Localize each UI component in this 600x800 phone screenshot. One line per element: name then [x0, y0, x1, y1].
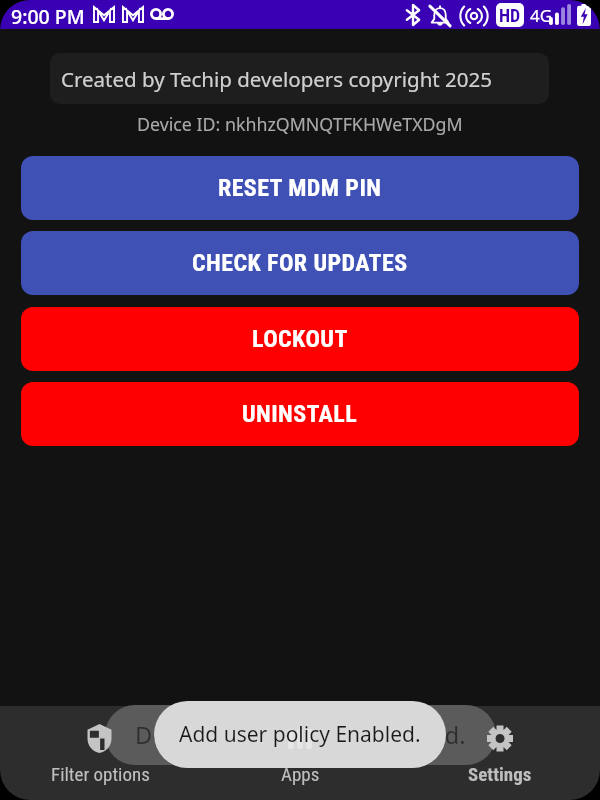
staticText: Created by Techip developers copyright 2…: [61, 65, 492, 93]
staticText: Filter options: [51, 763, 150, 785]
button[interactable]: Apps: [200, 706, 400, 800]
button[interactable]: LOCKOUT: [21, 307, 579, 371]
staticText: CHECK FOR UPDATES: [192, 249, 408, 277]
button[interactable]: Settings: [400, 706, 600, 800]
staticText: 4G: [530, 4, 553, 27]
staticText: RESET MDM PIN: [218, 174, 382, 202]
button[interactable]: CHECK FOR UPDATES: [21, 231, 579, 295]
staticText: Device ID: nkhhzQMNQTFKHWeTXDgM: [137, 112, 463, 136]
button[interactable]: UNINSTALL: [21, 382, 579, 446]
staticText: UNINSTALL: [242, 400, 358, 428]
staticText: Add user policy Enabled.: [179, 720, 421, 749]
staticText: Debug user policy is Disabled.: [135, 719, 466, 751]
staticText: 9:00 PM: [11, 3, 85, 29]
staticText: LOCKOUT: [252, 325, 348, 353]
button[interactable]: RESET MDM PIN: [21, 156, 579, 220]
staticText: Settings: [468, 763, 532, 785]
staticText: Apps: [281, 763, 320, 785]
button[interactable]: Filter options: [0, 706, 200, 800]
staticText: HD: [499, 5, 521, 26]
